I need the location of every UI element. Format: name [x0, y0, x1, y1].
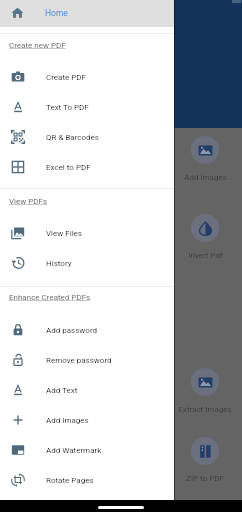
staticText: Text To PDF — [46, 103, 89, 112]
button[interactable]: Extract Images — [169, 368, 241, 414]
button[interactable]: Create PDF — [0, 62, 174, 92]
staticText: Remove password — [46, 356, 112, 365]
button[interactable]: Rotate Pages — [0, 465, 174, 495]
button[interactable]: Remove password — [0, 345, 174, 375]
staticText: Add Images — [184, 173, 227, 182]
staticText: Invert Pdf — [188, 251, 223, 260]
staticText: ZIP to PDF — [186, 474, 224, 483]
button[interactable]: Add Watermark — [0, 435, 174, 465]
button[interactable]: Add Images — [169, 136, 241, 182]
staticText: Create new PDF — [9, 41, 66, 50]
button[interactable]: View Files — [0, 218, 174, 248]
button[interactable]: Add Text — [0, 375, 174, 405]
staticText: Rotate Pages — [46, 476, 94, 485]
staticText: Add password — [46, 326, 98, 335]
button[interactable]: Text To PDF — [0, 92, 174, 122]
button[interactable]: ZIP to PDF — [169, 437, 241, 483]
button[interactable]: Invert Pdf — [169, 214, 241, 260]
staticText: Create PDF — [46, 73, 86, 82]
staticText: Add Text — [46, 386, 78, 395]
staticText: Enhance Created PDFs — [9, 293, 91, 302]
staticText: Add Images — [46, 416, 89, 425]
button[interactable]: Home — [0, 0, 174, 27]
button[interactable]: Excel to PDF — [0, 152, 174, 182]
staticText: Excel to PDF — [46, 163, 91, 172]
staticText: QR & Barcodes — [46, 133, 99, 142]
button[interactable]: History — [0, 248, 174, 278]
button[interactable]: Add password — [0, 315, 174, 345]
staticText: Extract Images — [178, 405, 232, 414]
button[interactable]: Add Images — [0, 405, 174, 435]
button[interactable]: QR & Barcodes — [0, 122, 174, 152]
staticText: Home — [45, 8, 68, 18]
staticText: View Files — [46, 229, 82, 238]
staticText: View PDFs — [9, 197, 48, 206]
staticText: Add Watermark — [46, 446, 102, 455]
staticText: History — [46, 259, 72, 268]
